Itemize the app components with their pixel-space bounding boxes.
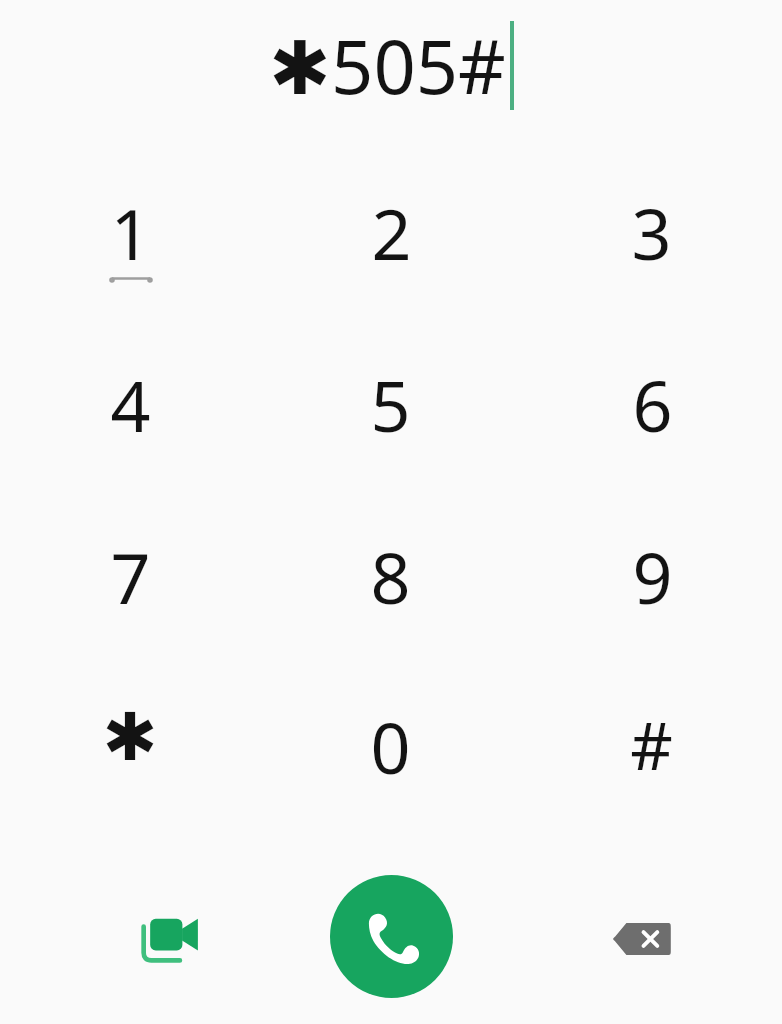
button[interactable]: ✱ [0,699,260,794]
button[interactable]: 7 [0,529,260,624]
staticText: 1 [110,185,151,280]
staticText: 6 [632,357,673,452]
staticText: 0 [370,699,411,794]
staticText: 7 [110,529,151,624]
staticText: 4 [110,357,151,452]
button[interactable]: Video call [118,887,222,991]
staticText: 9 [632,529,673,624]
button[interactable]: 6 [521,357,782,452]
staticText: 8 [370,529,411,624]
button[interactable]: # [521,699,782,794]
staticText: ✱ [102,699,158,776]
button[interactable]: 1 [0,185,260,280]
button[interactable]: Call [330,875,453,998]
button[interactable]: 5 [260,357,521,452]
button[interactable]: 3 [521,185,782,280]
staticText: # [630,699,673,789]
button[interactable]: 0 [260,699,521,794]
staticText: 5 [370,357,411,452]
button[interactable]: Backspace [590,887,694,991]
staticText: 2 [371,185,412,280]
button[interactable]: 2 [260,185,521,280]
button[interactable]: 9 [521,529,782,624]
button[interactable]: ✱505# [0,0,782,130]
staticText: ✱505# [269,15,506,116]
button[interactable]: 4 [0,357,260,452]
button[interactable]: 8 [260,529,521,624]
staticText: 3 [631,185,672,280]
